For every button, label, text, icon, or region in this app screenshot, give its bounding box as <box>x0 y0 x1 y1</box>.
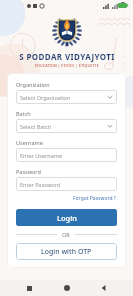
button[interactable]: Login with OTP <box>16 243 117 260</box>
button[interactable]: Forgot Password ? <box>72 194 117 203</box>
staticText: Password <box>16 168 41 175</box>
staticText: Select Organization <box>20 94 71 101</box>
staticText: Batch <box>16 110 31 117</box>
staticText: Select Batch <box>20 123 52 130</box>
other: Open dropdown <box>107 94 113 100</box>
other: Open dropdown <box>107 123 113 129</box>
staticText: Login <box>57 213 77 223</box>
staticText: S PODDAR VIDYAJYOTI <box>19 51 115 62</box>
button[interactable]: Select Batch <box>16 119 117 133</box>
staticText: OR <box>62 231 70 238</box>
button[interactable]: Select Organization <box>16 90 117 104</box>
staticText: Forgot Password ? <box>73 195 116 202</box>
staticText: Enter Password <box>20 181 61 188</box>
staticText: Organization <box>16 81 50 88</box>
button[interactable]: Login <box>16 209 117 226</box>
staticText: EDUCATION | ETHICS | ETIQUETTE <box>35 63 99 68</box>
button[interactable]: Back <box>96 280 112 296</box>
staticText: Login with OTP <box>41 247 92 257</box>
staticText: Username <box>16 139 43 146</box>
button[interactable]: Home <box>59 280 75 296</box>
button[interactable]: Enter Password <box>16 177 117 191</box>
staticText: Enter Username <box>20 152 63 159</box>
button[interactable]: Enter Username <box>16 148 117 162</box>
button[interactable]: Recent apps <box>21 280 37 296</box>
